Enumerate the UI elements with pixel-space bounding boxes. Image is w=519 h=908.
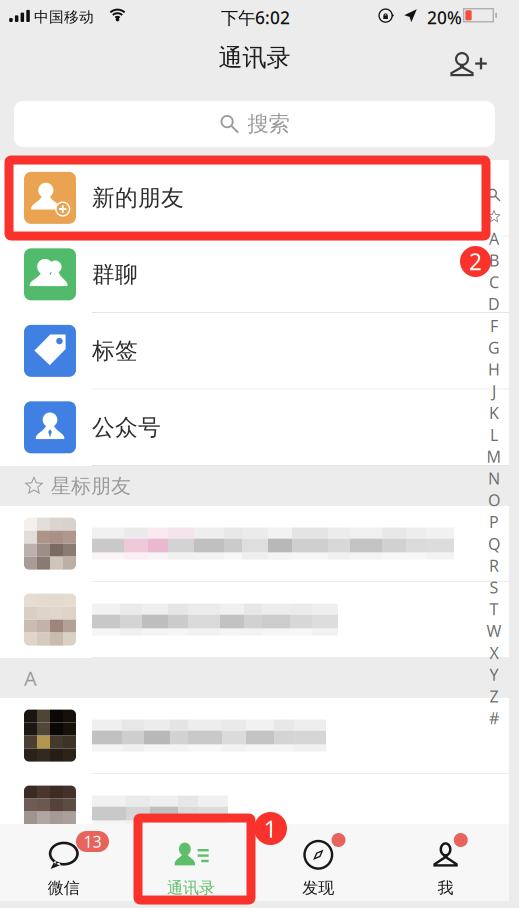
staticText: 群聊: [92, 260, 138, 288]
button[interactable]: A: [483, 228, 505, 249]
button[interactable]: Z: [483, 685, 505, 707]
button[interactable]: K: [483, 402, 505, 424]
staticText: Y: [489, 664, 498, 685]
staticText: A: [489, 228, 499, 249]
button[interactable]: 搜索: [14, 101, 495, 147]
staticText: B: [489, 250, 499, 271]
button[interactable]: 搜索: [483, 184, 505, 206]
staticText: R: [489, 555, 499, 576]
staticText: #: [489, 707, 499, 729]
staticText: 搜索: [247, 111, 289, 137]
staticText: C: [489, 271, 499, 293]
staticText: 微信: [48, 878, 80, 898]
button[interactable]: 群聊: [0, 236, 509, 313]
staticText: K: [489, 402, 499, 423]
button[interactable]: D: [483, 293, 505, 315]
staticText: 通讯录: [167, 878, 215, 898]
staticText: S: [489, 577, 498, 598]
button[interactable]: 我: [382, 824, 509, 901]
staticText: Q: [488, 533, 500, 554]
button[interactable]: 13: [0, 824, 127, 901]
staticText: A: [24, 665, 37, 691]
button[interactable]: #: [483, 707, 505, 729]
button[interactable]: 星标朋友: [483, 206, 505, 228]
button[interactable]: F: [483, 315, 505, 337]
staticText: 中国移动: [34, 8, 94, 26]
button[interactable]: 添加朋友: [437, 36, 499, 92]
button[interactable]: [0, 774, 509, 850]
staticText: 星标朋友: [51, 474, 131, 498]
button[interactable]: T: [483, 598, 505, 620]
staticText: T: [489, 598, 498, 620]
button[interactable]: X: [483, 642, 505, 664]
button[interactable]: 发现: [254, 824, 382, 901]
button[interactable]: M: [483, 446, 505, 467]
staticText: X: [489, 642, 498, 663]
staticText: 1: [263, 813, 277, 844]
button[interactable]: Q: [483, 533, 505, 555]
button[interactable]: 新的朋友: [0, 160, 509, 236]
staticText: L: [490, 424, 498, 445]
staticText: J: [492, 380, 496, 402]
staticText: 下午6:02: [221, 6, 290, 29]
staticText: 我: [437, 878, 453, 898]
staticText: 20%: [427, 6, 462, 29]
button[interactable]: [0, 582, 509, 658]
button[interactable]: G: [483, 337, 505, 358]
staticText: N: [488, 468, 500, 489]
button[interactable]: O: [483, 489, 505, 511]
button[interactable]: N: [483, 467, 505, 489]
button[interactable]: [0, 698, 509, 774]
button[interactable]: [0, 506, 509, 582]
button[interactable]: 公众号: [0, 389, 509, 466]
button[interactable]: W: [483, 620, 505, 642]
staticText: O: [488, 489, 500, 511]
staticText: Z: [489, 686, 498, 707]
button[interactable]: B: [483, 249, 505, 271]
staticText: 新的朋友: [92, 184, 184, 212]
staticText: 通讯录: [218, 43, 290, 72]
button[interactable]: J: [483, 380, 505, 402]
button[interactable]: R: [483, 555, 505, 576]
button[interactable]: L: [483, 424, 505, 446]
staticText: H: [488, 359, 500, 380]
staticText: 标签: [92, 337, 138, 365]
button[interactable]: 通讯录: [127, 824, 254, 901]
button[interactable]: 标签: [0, 313, 509, 389]
staticText: 发现: [302, 878, 334, 898]
staticText: G: [488, 337, 500, 358]
button[interactable]: P: [483, 511, 505, 533]
staticText: 公众号: [92, 413, 161, 441]
staticText: D: [488, 293, 500, 314]
staticText: F: [490, 315, 498, 336]
button[interactable]: C: [483, 271, 505, 293]
button[interactable]: H: [483, 358, 505, 380]
button[interactable]: S: [483, 576, 505, 598]
staticText: M: [486, 446, 501, 467]
staticText: 2: [469, 246, 482, 276]
staticText: W: [486, 620, 501, 641]
staticText: P: [489, 511, 499, 532]
staticText: 13: [83, 831, 101, 852]
button[interactable]: Y: [483, 664, 505, 685]
